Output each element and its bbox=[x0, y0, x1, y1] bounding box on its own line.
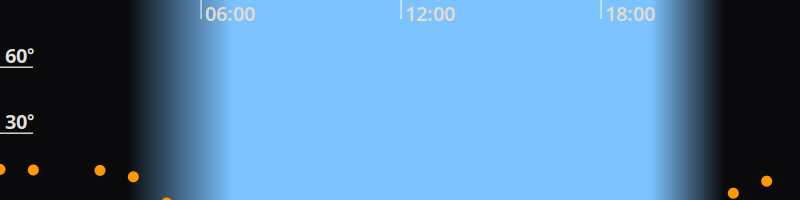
staticText: ° bbox=[27, 109, 34, 132]
staticText: 30 bbox=[5, 108, 27, 135]
staticText: 12:00 bbox=[405, 0, 455, 27]
staticText: 60 bbox=[5, 42, 27, 69]
staticText: 18:00 bbox=[605, 0, 655, 27]
staticText: 06:00 bbox=[205, 0, 255, 27]
staticText: ° bbox=[27, 43, 34, 66]
